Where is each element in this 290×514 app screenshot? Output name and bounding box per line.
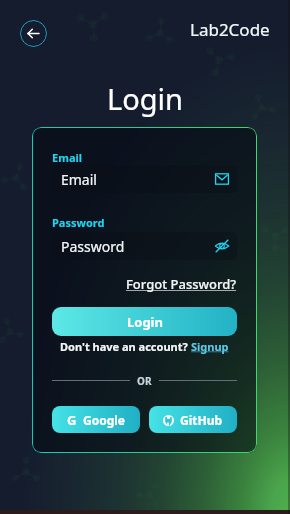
button[interactable]: Lab2Code [190, 18, 270, 41]
button[interactable]: Password [52, 232, 237, 260]
staticText: OR [137, 374, 152, 386]
button[interactable]: Email [52, 165, 237, 193]
staticText: Google [83, 412, 126, 428]
button[interactable]: G [52, 406, 140, 433]
button[interactable]: GitHub [149, 406, 237, 433]
staticText: G [67, 411, 77, 429]
staticText: Password [61, 237, 125, 256]
staticText: Email [61, 170, 97, 189]
staticText: Login [107, 79, 183, 118]
staticText: Password [52, 215, 105, 230]
staticText: Email [52, 150, 83, 165]
button[interactable]: Back [20, 20, 47, 47]
staticText: GitHub [180, 412, 223, 428]
button[interactable]: Forgot Password? [126, 275, 237, 293]
other: Email icon [215, 172, 229, 186]
button[interactable]: Login [52, 307, 237, 336]
button[interactable]: Signup [191, 339, 229, 354]
other: Toggle password visibility [215, 239, 229, 253]
staticText: Don't have an account? [60, 339, 191, 354]
staticText: Login [127, 313, 163, 331]
